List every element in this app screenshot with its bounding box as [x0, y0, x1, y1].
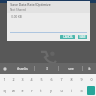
staticText: 9	[80, 77, 83, 82]
staticText: e	[21, 88, 24, 93]
staticText: 5	[40, 77, 43, 82]
button[interactable]: i	[66, 85, 76, 96]
staticText: u	[60, 88, 63, 93]
staticText: q	[3, 88, 6, 93]
button[interactable]: w	[9, 85, 18, 96]
staticText: 0	[90, 77, 93, 82]
button[interactable]: it	[83, 63, 96, 74]
button[interactable]: q	[0, 85, 9, 96]
staticText: i	[71, 88, 72, 93]
button[interactable]: 0	[86, 74, 96, 85]
staticText: 8	[70, 77, 73, 82]
button[interactable]: 6	[46, 74, 56, 85]
button[interactable]: o	[76, 85, 86, 96]
button[interactable]: 8	[66, 74, 76, 85]
staticText: Save Data Rate/Optimize	[10, 2, 51, 7]
button[interactable]: 5	[36, 74, 46, 85]
button[interactable]: Enter	[87, 86, 95, 95]
staticText: SAVE	[79, 35, 86, 39]
staticText: 0.00 KB	[11, 15, 22, 19]
staticText: it	[88, 66, 91, 71]
button[interactable]: 4	[27, 74, 36, 85]
button[interactable]: CANCEL	[60, 35, 75, 39]
button[interactable]: 7	[56, 74, 66, 85]
button[interactable]: u	[56, 85, 66, 96]
staticText: 1	[3, 77, 6, 82]
button[interactable]: r	[27, 85, 36, 96]
button[interactable]: SAVE	[78, 35, 87, 39]
button[interactable]: t	[36, 85, 46, 96]
staticText: I	[46, 66, 48, 71]
staticText: y	[50, 88, 52, 93]
staticText: w	[12, 88, 15, 93]
staticText: 2	[12, 77, 15, 82]
button[interactable]: Voice input	[0, 63, 10, 74]
button[interactable]: 1	[0, 74, 9, 85]
button[interactable]: thanks	[10, 63, 34, 74]
button[interactable]: 9	[76, 74, 86, 85]
staticText: CANCEL	[63, 35, 73, 39]
staticText: see	[68, 66, 74, 71]
staticText: 3	[21, 77, 24, 82]
staticText: thanks	[17, 66, 28, 71]
button[interactable]: see	[59, 63, 82, 74]
staticText: Not Shared	[10, 8, 26, 12]
button[interactable]: 3	[18, 74, 27, 85]
button[interactable]: 2	[9, 74, 18, 85]
staticText: r	[31, 88, 33, 93]
staticText: t	[40, 88, 42, 93]
staticText: 6	[50, 77, 53, 82]
button[interactable]: e	[18, 85, 27, 96]
staticText: 7	[60, 77, 63, 82]
button[interactable]: I	[35, 63, 58, 74]
staticText: o	[80, 88, 83, 93]
button[interactable]: y	[46, 85, 56, 96]
staticText: 4	[30, 77, 33, 82]
